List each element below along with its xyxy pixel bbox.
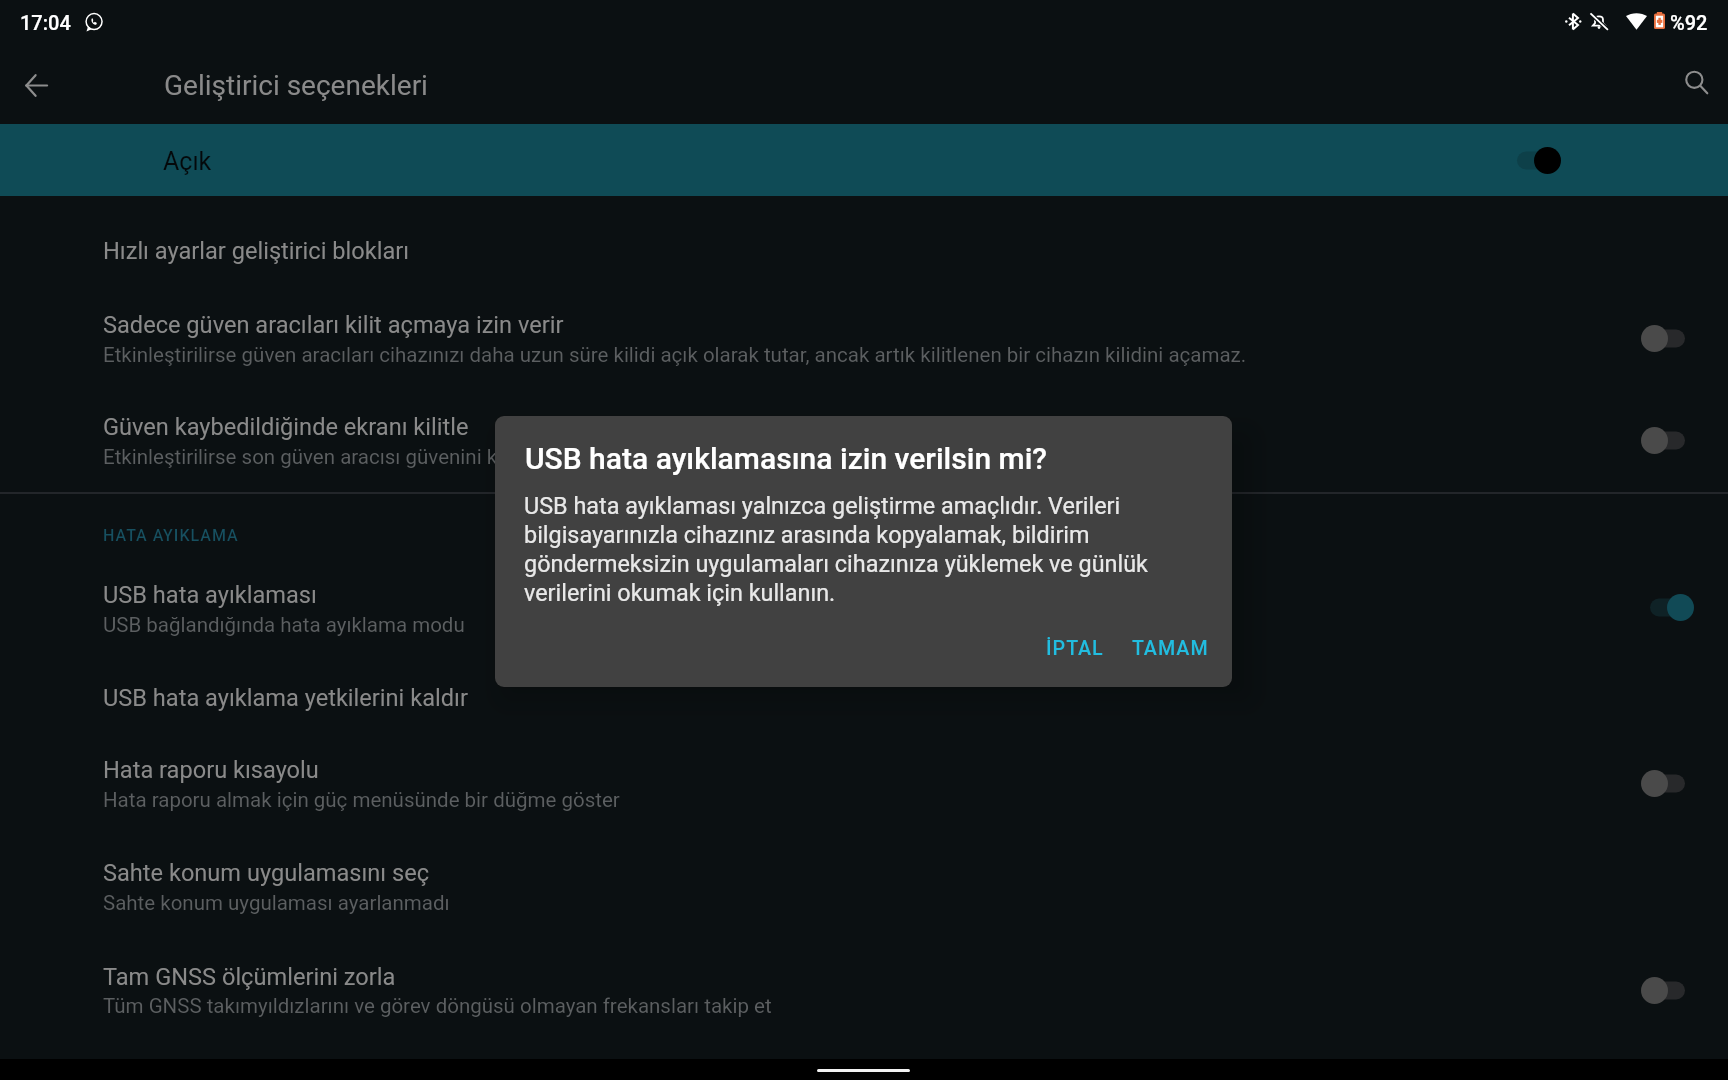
staticText: USB hata ayıklaması yalnızca geliştirme … (524, 492, 1179, 607)
button[interactable]: Toggle (1650, 594, 1694, 621)
staticText: Güven kaybedildiğinde ekranı kilitle (103, 413, 469, 441)
staticText: Hata raporu almak için güç menüsünde bir… (103, 788, 620, 812)
staticText: Hızlı ayarlar geliştirici blokları (103, 237, 410, 265)
button[interactable]: Sadece güven aracıları kilit açmaya izin… (0, 283, 1728, 386)
staticText: Etkinleştirilirse son güven aracısı güve… (103, 445, 728, 469)
staticText: Etkinleştirilirse güven aracıları cihazı… (103, 343, 1247, 367)
staticText: Geliştirici seçenekleri (164, 69, 428, 102)
staticText: USB hata ayıklaması (103, 581, 317, 609)
staticText: HATA AYIKLAMA (103, 526, 239, 545)
staticText: USB hata ayıklama yetkilerini kaldır (103, 684, 468, 712)
staticText: Açık (163, 147, 212, 176)
button[interactable]: Hızlı ayarlar geliştirici blokları (0, 210, 1728, 283)
button[interactable]: Açık (0, 124, 1728, 196)
staticText: TAMAM (1132, 637, 1208, 660)
button[interactable]: Toggle (1641, 770, 1685, 797)
staticText: Sadece güven aracıları kilit açmaya izin… (103, 311, 564, 339)
staticText: %92 (1670, 11, 1708, 34)
button[interactable]: Hata raporu kısayolu (0, 730, 1728, 833)
button[interactable]: Güven kaybedildiğinde ekranı kilitle (0, 386, 1728, 489)
button[interactable]: USB hata ayıklama yetkilerini kaldır (0, 657, 1728, 730)
button[interactable]: USB hata ayıklaması (0, 554, 1728, 657)
staticText: Tüm GNSS takımyıldızlarını ve görev döng… (103, 994, 772, 1018)
button[interactable]: Toggle (1641, 977, 1685, 1004)
staticText: USB bağlandığında hata ayıklama modu (103, 613, 465, 637)
staticText: İPTAL (1046, 637, 1104, 660)
button[interactable]: İPTAL (1033, 633, 1111, 673)
button[interactable]: Back (8, 57, 64, 113)
button[interactable]: Search (1668, 54, 1724, 110)
button[interactable]: Toggle (1641, 427, 1685, 454)
button[interactable]: Sahte konum uygulamasını seç (0, 833, 1728, 936)
button[interactable]: Toggle (1641, 325, 1685, 352)
staticText: 17:04 (20, 11, 71, 34)
staticText: USB hata ayıklamasına izin verilsin mi? (525, 441, 1047, 476)
staticText: Sahte konum uygulamasını seç (103, 859, 430, 887)
staticText: Tam GNSS ölçümlerini zorla (103, 963, 396, 991)
staticText: Sahte konum uygulaması ayarlanmadı (103, 891, 450, 915)
button[interactable]: TAMAM (1122, 633, 1208, 673)
staticText: Hata raporu kısayolu (103, 756, 319, 784)
button[interactable]: Tam GNSS ölçümlerini zorla (0, 936, 1728, 1039)
